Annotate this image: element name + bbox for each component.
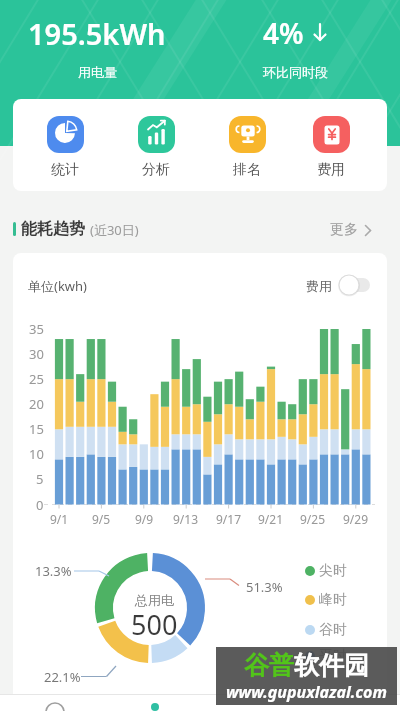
- staticText: 费用: [317, 161, 345, 179]
- staticText: 15: [29, 420, 44, 438]
- staticText: 环比同时段: [263, 64, 328, 80]
- staticText: 500: [131, 606, 178, 643]
- staticText: www.gupuxlazal.com: [226, 681, 387, 703]
- staticText: (近30日): [90, 221, 139, 239]
- staticText: 22.1%: [44, 668, 81, 686]
- staticText: 能耗趋势: [21, 219, 85, 239]
- staticText: 统计: [51, 161, 79, 179]
- staticText: 9/5: [92, 511, 111, 527]
- staticText: 9/21: [258, 511, 284, 527]
- staticText: 5: [36, 470, 44, 488]
- staticText: 软件园: [294, 650, 369, 681]
- staticText: 25: [29, 370, 44, 388]
- staticText: 0: [36, 496, 44, 514]
- button[interactable]: 费用: [300, 116, 362, 179]
- staticText: 总用电: [135, 592, 174, 608]
- staticText: 4%: [263, 14, 304, 52]
- staticText: 13.3%: [35, 562, 72, 580]
- staticText: 更多: [330, 221, 358, 239]
- staticText: 10: [29, 445, 44, 463]
- staticText: 谷普: [244, 650, 294, 681]
- staticText: 分析: [142, 161, 170, 179]
- staticText: 9/1: [50, 511, 69, 527]
- button[interactable]: 排名: [216, 116, 278, 179]
- staticText: 用电量: [78, 64, 117, 80]
- staticText: 35: [29, 320, 44, 338]
- staticText: 谷时: [319, 621, 347, 639]
- staticText: 51.3%: [246, 578, 283, 596]
- staticText: 尖时: [319, 562, 347, 580]
- button[interactable]: 更多: [330, 219, 387, 241]
- staticText: 单位(kwh): [28, 277, 87, 295]
- staticText: 9/9: [135, 511, 154, 527]
- staticText: 峰时: [319, 591, 347, 609]
- staticText: 195.5kWh: [28, 14, 166, 53]
- staticText: 9/25: [300, 511, 326, 527]
- button[interactable]: 统计: [34, 116, 96, 179]
- staticText: 20: [29, 395, 44, 413]
- button[interactable]: 分析: [125, 116, 187, 179]
- button[interactable]: [335, 269, 375, 301]
- staticText: 平时: [319, 647, 347, 665]
- staticText: 9/13: [173, 511, 199, 527]
- staticText: 30: [29, 345, 44, 363]
- button[interactable]: [115, 695, 195, 711]
- staticText: 排名: [233, 161, 261, 179]
- button[interactable]: [15, 695, 95, 711]
- staticText: 9/17: [216, 511, 242, 527]
- staticText: 费用: [306, 278, 332, 294]
- staticText: 9/29: [343, 511, 369, 527]
